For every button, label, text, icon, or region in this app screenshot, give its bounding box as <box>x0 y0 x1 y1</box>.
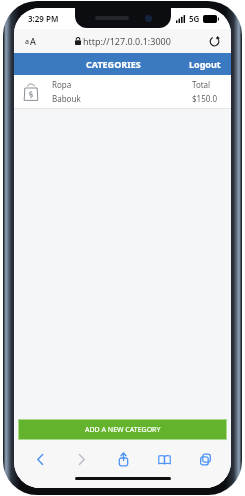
button[interactable]: Reload <box>206 33 222 49</box>
button[interactable]: Bookmarks <box>152 447 176 471</box>
staticText: Babouk <box>52 93 81 104</box>
staticText: http://127.0.0.1:3000 <box>83 35 171 47</box>
staticText: Total <box>192 79 211 90</box>
button[interactable]: Tabs <box>193 447 217 471</box>
staticText: $150.0 <box>192 93 218 104</box>
staticText: a <box>25 37 30 47</box>
staticText: CATEGORIES <box>86 58 141 70</box>
button[interactable]: ADD A NEW CATEGORY <box>18 419 227 440</box>
other: Category <box>21 82 41 102</box>
staticText: 5G <box>189 13 200 24</box>
staticText: A <box>30 35 36 47</box>
button[interactable]: Back <box>28 447 52 471</box>
button[interactable]: Page settings <box>25 35 36 47</box>
staticText: Logout <box>189 58 221 70</box>
staticText: 3:29 PM <box>28 13 59 24</box>
button[interactable]: Logout <box>179 53 231 75</box>
button[interactable]: Category <box>14 75 231 108</box>
button[interactable]: Forward <box>69 447 93 471</box>
button[interactable]: Share <box>111 447 135 471</box>
staticText: ADD A NEW CATEGORY <box>85 425 161 435</box>
staticText: Ropa <box>52 79 72 90</box>
